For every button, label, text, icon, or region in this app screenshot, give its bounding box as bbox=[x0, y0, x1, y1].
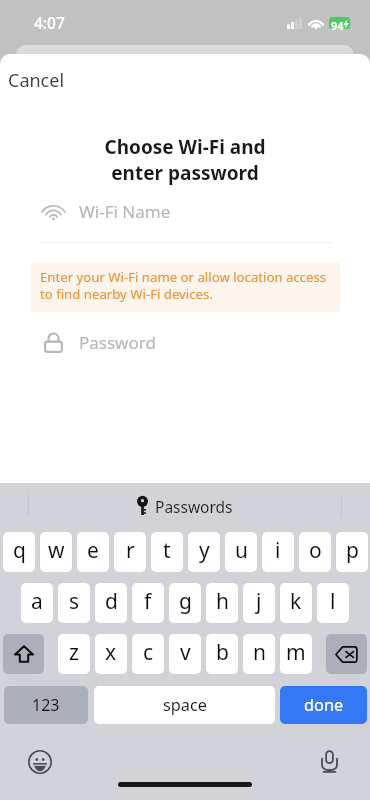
staticText: Password bbox=[79, 331, 156, 354]
button[interactable]: h bbox=[206, 583, 238, 623]
staticText: Choose Wi-Fi and enter password bbox=[0, 134, 370, 185]
button[interactable]: Shift bbox=[3, 634, 44, 674]
staticText: j bbox=[256, 587, 262, 616]
staticText: m bbox=[286, 638, 306, 667]
staticText: Cancel bbox=[8, 68, 65, 93]
button[interactable]: f bbox=[132, 583, 164, 623]
staticText: t bbox=[163, 536, 171, 565]
staticText: p bbox=[346, 536, 359, 565]
button[interactable]: Backspace bbox=[326, 634, 367, 674]
button[interactable]: w bbox=[40, 532, 72, 572]
staticText: h bbox=[216, 587, 229, 616]
button[interactable]: Emoji bbox=[27, 749, 52, 774]
staticText: v bbox=[180, 638, 191, 667]
button[interactable]: v bbox=[169, 634, 201, 674]
button[interactable]: done bbox=[280, 686, 367, 724]
button[interactable]: n bbox=[243, 634, 275, 674]
staticText: b bbox=[216, 638, 229, 667]
staticText: l bbox=[330, 587, 336, 616]
button[interactable]: 123 bbox=[4, 686, 88, 724]
staticText: Passwords bbox=[155, 496, 233, 517]
button[interactable]: l bbox=[317, 583, 349, 623]
button[interactable]: i bbox=[262, 532, 294, 572]
button[interactable]: y bbox=[188, 532, 220, 572]
staticText: o bbox=[309, 536, 322, 565]
button[interactable]: p bbox=[336, 532, 368, 572]
staticText: z bbox=[69, 638, 79, 667]
staticText: f bbox=[144, 587, 152, 616]
staticText: d bbox=[105, 587, 118, 616]
staticText: done bbox=[304, 694, 344, 716]
button[interactable]: r bbox=[114, 532, 146, 572]
button[interactable]: space bbox=[94, 686, 275, 724]
button[interactable]: q bbox=[3, 532, 35, 572]
staticText: 94 bbox=[331, 18, 344, 33]
button[interactable]: z bbox=[58, 634, 90, 674]
staticText: 123 bbox=[32, 694, 60, 716]
staticText: 4:07 bbox=[34, 12, 65, 33]
staticText: r bbox=[126, 536, 135, 565]
button[interactable]: o bbox=[299, 532, 331, 572]
staticText: u bbox=[235, 536, 248, 565]
button[interactable]: j bbox=[243, 583, 275, 623]
staticText: c bbox=[143, 638, 154, 667]
button[interactable]: k bbox=[280, 583, 312, 623]
button[interactable]: a bbox=[21, 583, 53, 623]
button[interactable]: c bbox=[132, 634, 164, 674]
staticText: e bbox=[87, 536, 99, 565]
button[interactable]: Cancel bbox=[0, 63, 80, 97]
button[interactable]: t bbox=[151, 532, 183, 572]
staticText: q bbox=[13, 536, 26, 565]
button[interactable]: x bbox=[95, 634, 127, 674]
button[interactable]: b bbox=[206, 634, 238, 674]
button[interactable]: g bbox=[169, 583, 201, 623]
staticText: y bbox=[199, 536, 210, 565]
button[interactable]: u bbox=[225, 532, 257, 572]
staticText: k bbox=[290, 587, 302, 616]
staticText: s bbox=[69, 587, 80, 616]
staticText: i bbox=[275, 536, 281, 565]
button[interactable]: m bbox=[280, 634, 312, 674]
staticText: n bbox=[253, 638, 266, 667]
staticText: space bbox=[163, 694, 207, 716]
button[interactable]: e bbox=[77, 532, 109, 572]
staticText: x bbox=[105, 638, 117, 667]
button[interactable]: Passwords bbox=[0, 494, 370, 518]
staticText: w bbox=[48, 536, 65, 565]
staticText: Enter your Wi-Fi name or allow location … bbox=[40, 268, 327, 303]
staticText: g bbox=[179, 587, 192, 616]
staticText: a bbox=[31, 587, 43, 616]
button[interactable]: Dictation bbox=[317, 749, 342, 774]
button[interactable]: d bbox=[95, 583, 127, 623]
button[interactable]: Wi-Fi Name bbox=[0, 194, 370, 228]
button[interactable]: Password bbox=[0, 326, 370, 358]
staticText: Wi-Fi Name bbox=[79, 200, 171, 223]
button[interactable]: s bbox=[58, 583, 90, 623]
